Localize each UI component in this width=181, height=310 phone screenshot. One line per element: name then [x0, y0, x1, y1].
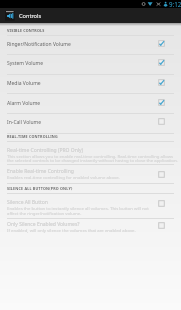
- staticText: Media Volume: [7, 80, 41, 87]
- button[interactable]: Toggle: [155, 219, 168, 232]
- staticText: SILENCE ALL BUTTON(PRO ONLY): [7, 186, 73, 191]
- button[interactable]: [0, 54, 181, 74]
- staticText: Only Silence Enabled Volumes?: [7, 221, 80, 228]
- button[interactable]: Toggle: [155, 168, 168, 181]
- staticText: 9:12: [169, 0, 181, 8]
- button[interactable]: Toggle: [155, 56, 168, 69]
- staticText: affect the ringer/notification volume.: [7, 210, 82, 216]
- staticText: Ringer/Notification Volume: [7, 41, 71, 48]
- staticText: Enable Real-time Controlling: [7, 168, 74, 175]
- staticText: This section allows you to enable real-t…: [7, 153, 174, 159]
- staticText: Alarm Volume: [7, 100, 41, 107]
- staticText: If enabled, will only silence the volume…: [7, 227, 136, 233]
- button[interactable]: Controls: [0, 8, 181, 23]
- staticText: Real-time Controlling (PRO Only): [7, 147, 84, 154]
- staticText: REAL-TIME CONTROLLING: [7, 134, 58, 139]
- staticText: System Volume: [7, 60, 44, 67]
- button[interactable]: Toggle: [155, 115, 168, 128]
- button[interactable]: Toggle: [155, 197, 168, 210]
- button[interactable]: Toggle: [155, 76, 168, 89]
- button[interactable]: Toggle: [155, 96, 168, 109]
- staticText: Enables the button to instantly silence …: [7, 205, 149, 211]
- staticText: VISIBLE CONTROLS: [7, 28, 45, 33]
- staticText: Enables real-time controlling for enable…: [7, 174, 120, 180]
- button[interactable]: [0, 218, 181, 237]
- button[interactable]: Toggle: [155, 37, 168, 50]
- staticText: Silence All Button: [7, 199, 48, 206]
- staticText: Controls: [19, 12, 42, 20]
- staticText: the selected controls to be changed inst…: [7, 157, 178, 163]
- button[interactable]: [0, 74, 181, 94]
- button[interactable]: [0, 164, 181, 183]
- button[interactable]: [0, 141, 181, 164]
- button[interactable]: [0, 193, 181, 218]
- staticText: In-Call Volume: [7, 119, 42, 126]
- button[interactable]: [0, 113, 181, 133]
- button[interactable]: [0, 35, 181, 55]
- button[interactable]: [0, 93, 181, 113]
